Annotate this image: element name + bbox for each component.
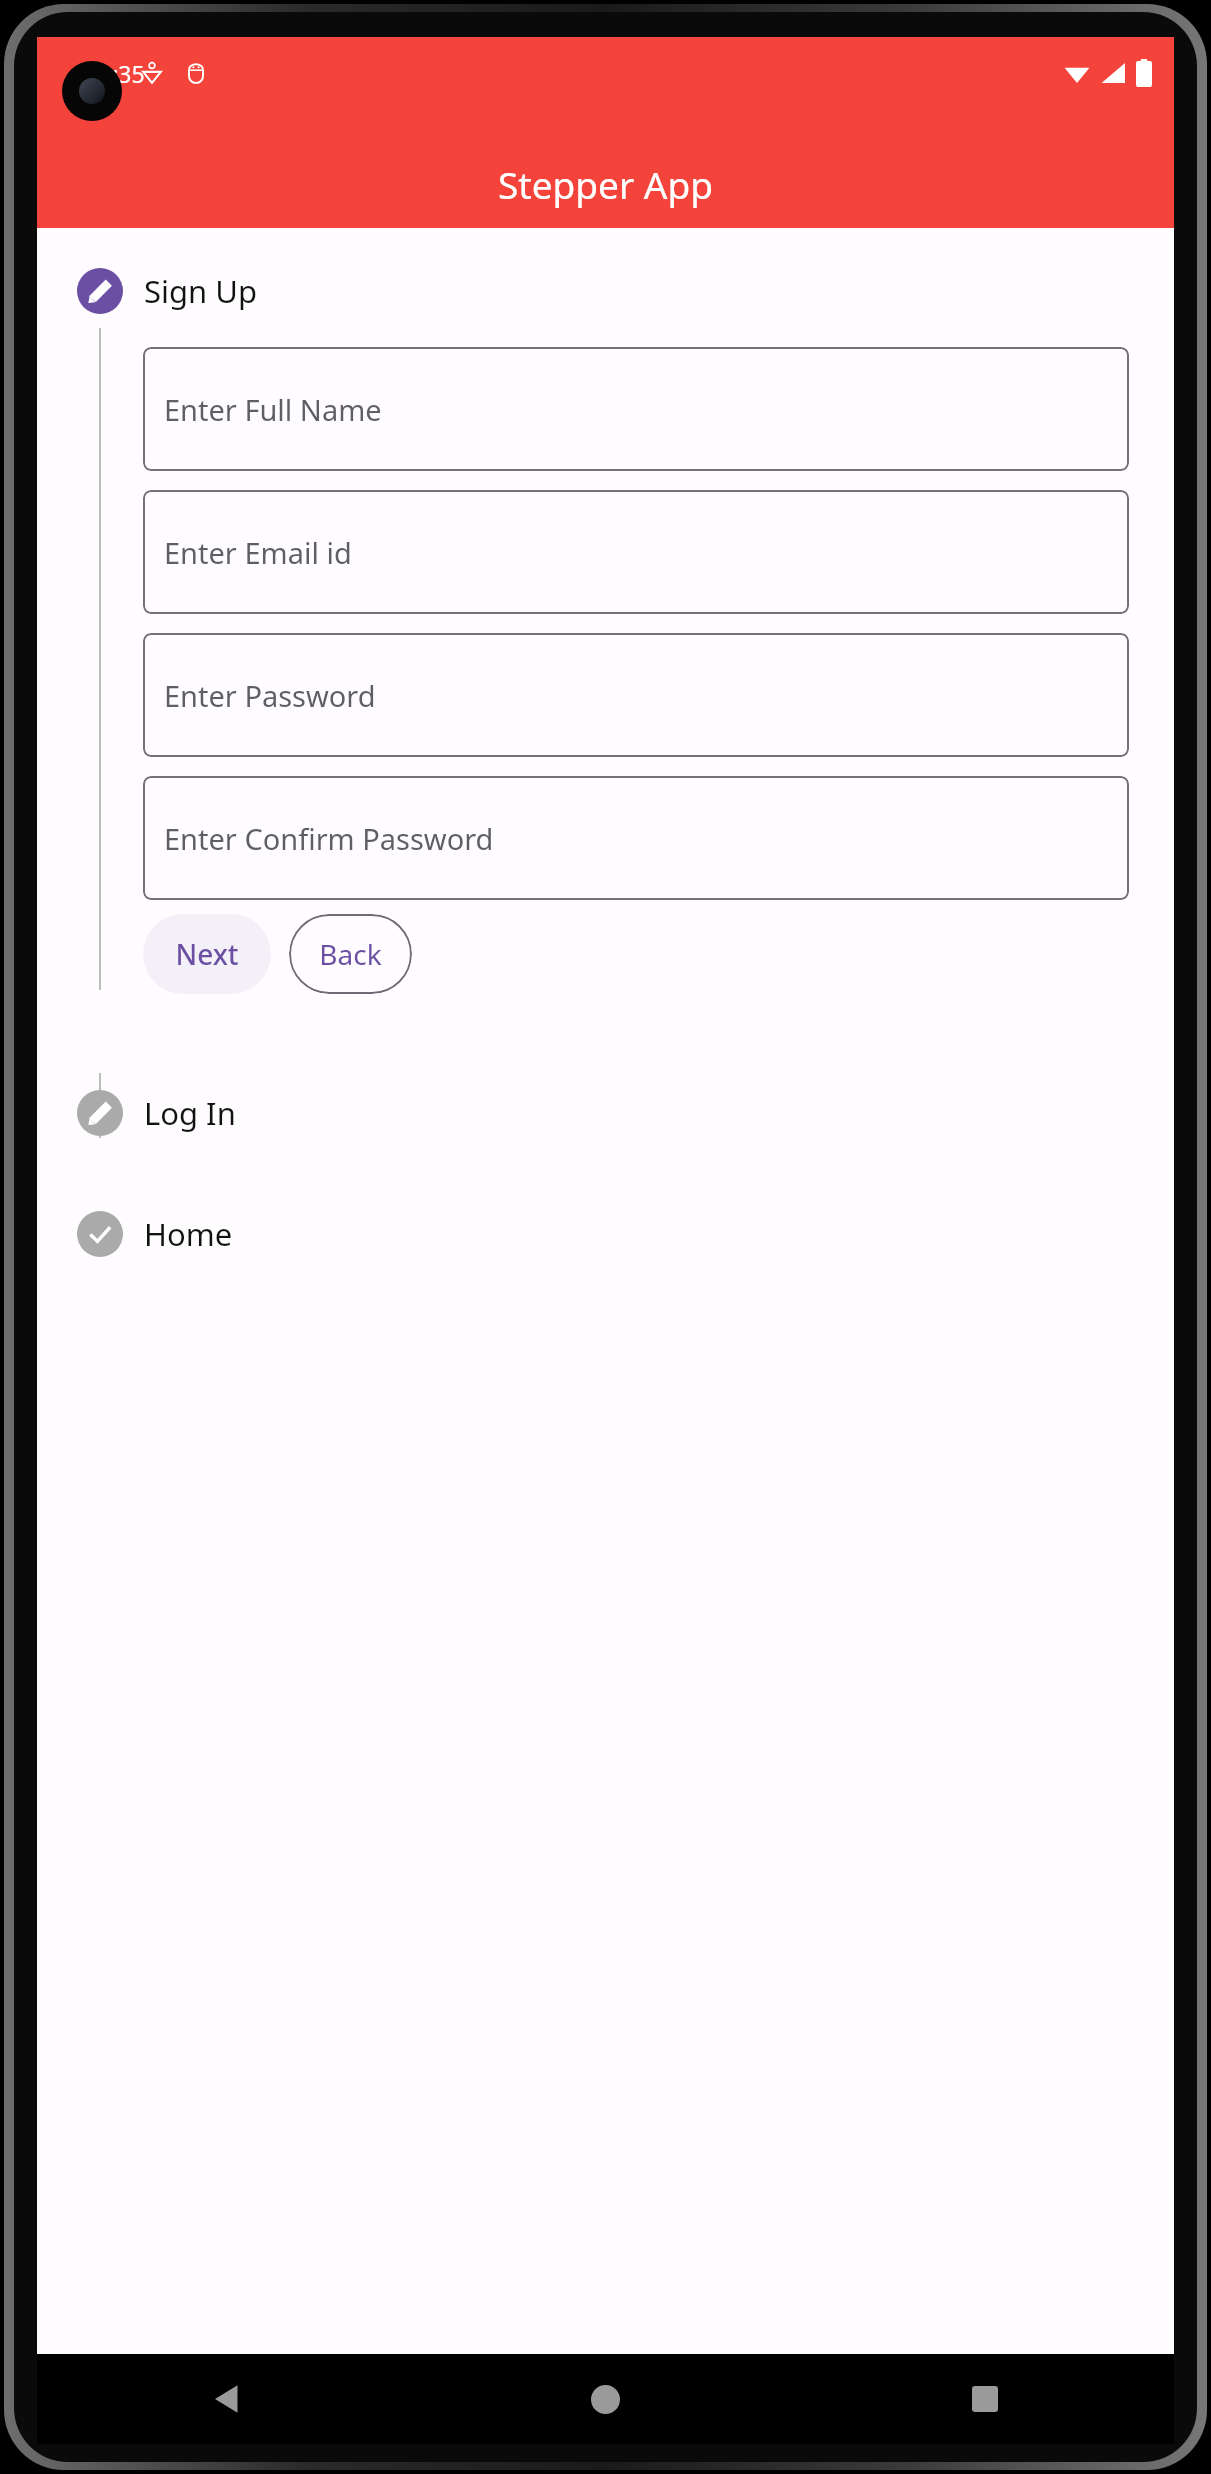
staticText: Log In <box>144 1092 236 1134</box>
staticText: Enter Full Name <box>164 390 382 429</box>
button[interactable]: Recent apps <box>795 2386 1174 2412</box>
button[interactable]: Next <box>143 914 271 994</box>
button[interactable]: Home <box>37 1205 1174 1263</box>
staticText: Back <box>319 935 382 973</box>
staticText: Enter Email id <box>164 533 352 572</box>
button[interactable]: Log In <box>37 1084 1174 1142</box>
button[interactable]: Sign Up <box>37 262 1174 320</box>
staticText: Stepper App <box>498 159 713 209</box>
staticText: Next <box>175 935 239 973</box>
button[interactable]: Enter Password <box>143 633 1129 757</box>
staticText: Sign Up <box>144 270 258 312</box>
button[interactable]: Enter Email id <box>143 490 1129 614</box>
staticText: Home <box>144 1213 233 1255</box>
button[interactable]: Home <box>416 2385 795 2414</box>
staticText: Enter Password <box>164 676 376 715</box>
button[interactable]: Enter Confirm Password <box>143 776 1129 900</box>
button[interactable]: Back <box>289 914 412 994</box>
staticText: Enter Confirm Password <box>164 819 494 858</box>
button[interactable]: Back <box>37 2384 416 2414</box>
staticText: 2:35 <box>99 58 145 89</box>
button[interactable]: Enter Full Name <box>143 347 1129 471</box>
